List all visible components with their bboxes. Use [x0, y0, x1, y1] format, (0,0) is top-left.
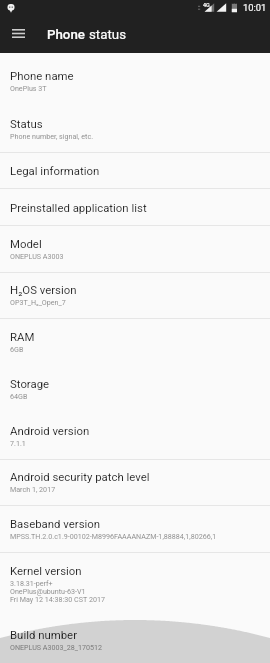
button[interactable]: Build number [0, 617, 270, 663]
staticText: Status [10, 117, 43, 130]
staticText: MPSS.TH.2.0.c1.9-00102-M8996FAAAANAZM-1,… [10, 532, 217, 540]
button[interactable]: Phone name [0, 58, 270, 106]
staticText: Kernel version [10, 564, 82, 577]
staticText: OP3T_H₂_Open_7 [10, 298, 66, 306]
staticText: RAM [10, 330, 35, 343]
staticText: Storage [10, 377, 50, 390]
staticText: ONEPLUS A3003_28_170512 [10, 643, 103, 651]
button[interactable]: Storage [0, 366, 270, 413]
staticText: Phone [47, 27, 89, 43]
button[interactable]: Android version [0, 413, 270, 460]
button[interactable]: Kernel version [0, 553, 270, 618]
button[interactable]: Android security patch level [0, 459, 270, 506]
button[interactable]: Legal information [0, 152, 270, 189]
button[interactable]: H₂OS version [0, 272, 270, 319]
staticText: ONEPLUS A3003 [10, 252, 64, 260]
staticText: Fri May 12 14:38:30 CST 2017 [10, 595, 105, 603]
staticText: 7.1.1 [10, 439, 26, 447]
staticText: 64GB [10, 392, 28, 400]
staticText: 3.18.31-perf+ [10, 579, 53, 587]
staticText: 10:01 [243, 2, 267, 13]
staticText: Android security patch level [10, 470, 150, 483]
staticText: H₂OS version [10, 283, 77, 296]
staticText: Android version [10, 424, 90, 437]
button[interactable]: Baseband version [0, 506, 270, 553]
staticText: OnePlus 3T [10, 84, 47, 92]
staticText: status [89, 27, 126, 43]
button[interactable]: Preinstalled application list [0, 189, 270, 226]
staticText: Preinstalled application list [10, 201, 147, 214]
button[interactable]: Status [0, 106, 270, 153]
staticText: Build number [10, 628, 78, 641]
staticText: Model [10, 237, 42, 250]
staticText: OnePlus@ubuntu-63-V1 [10, 587, 86, 595]
staticText: 6GB [10, 345, 24, 353]
staticText: Baseband version [10, 517, 101, 530]
staticText: 4G [203, 2, 210, 8]
staticText: Phone number, signal, etc. [10, 132, 94, 140]
staticText: Phone name [10, 69, 74, 82]
button[interactable]: RAM [0, 319, 270, 366]
staticText: March 1, 2017 [10, 485, 56, 493]
staticText: Legal information [10, 164, 100, 177]
button[interactable]: Open navigation drawer [5, 20, 32, 47]
button[interactable]: Model [0, 226, 270, 273]
